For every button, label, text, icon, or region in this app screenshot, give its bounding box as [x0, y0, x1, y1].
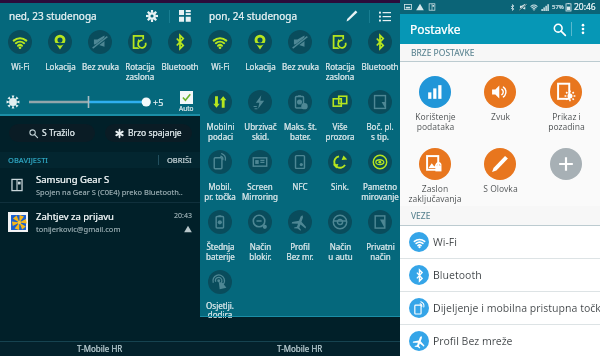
staticText: ned, 23 studenoga [9, 9, 97, 23]
button[interactable]: Wi-Fi [400, 226, 600, 258]
staticText: Postavke [410, 21, 461, 37]
staticText: Bez zvuka [82, 61, 119, 72]
staticText: Rotacija zaslona [325, 61, 355, 82]
staticText: Auto [179, 104, 194, 113]
staticText: Zvuk [491, 111, 510, 123]
button[interactable]: NFC [280, 150, 320, 210]
button[interactable]: Settings [141, 5, 163, 27]
staticText: T-Mobile HR [277, 343, 323, 354]
button[interactable]: Način u autu [320, 210, 360, 270]
staticText: Štednja baterije [206, 241, 235, 262]
staticText: VEZE [411, 210, 431, 222]
staticText: S Olovka [483, 183, 518, 195]
button[interactable] [535, 134, 597, 206]
button[interactable]: More options [572, 18, 594, 40]
button[interactable]: Ubrzivač skid. [240, 90, 280, 150]
button[interactable]: Bluetooth [160, 30, 200, 90]
button[interactable]: Sink. [320, 150, 360, 210]
staticText: Način u autu [328, 241, 353, 262]
staticText: Screen Mirroring [242, 181, 278, 202]
button[interactable]: Rotacija zaslona [320, 30, 360, 90]
staticText: NFC [292, 181, 308, 192]
staticText: OBAVIJESTI [8, 155, 49, 165]
button[interactable]: Screen Mirroring [240, 150, 280, 210]
staticText: Spojen na Gear S (C0E4) preko Bluetooth.… [36, 187, 183, 197]
button[interactable]: Maks. št. bater. [280, 90, 320, 150]
staticText: Bluetooth [361, 61, 399, 72]
button[interactable]: Način blokir. [240, 210, 280, 270]
button[interactable]: Zahtjev za prijavu [0, 203, 200, 241]
button[interactable]: Profil Bez mreže [400, 325, 600, 356]
button[interactable]: Dijeljenje i mobilna pristupna točk.. [400, 292, 600, 324]
staticText: BRZE POSTAVKE [411, 47, 475, 59]
staticText: 57% [552, 3, 564, 11]
staticText: Osjetlji. dodira [206, 300, 234, 321]
button[interactable]: Auto brightness [179, 91, 194, 113]
staticText: S Tražilo [42, 127, 75, 139]
staticText: Ubrzivač skid. [244, 121, 277, 142]
staticText: Korištenje podataka [415, 111, 456, 133]
staticText: Zaslon zaključavanja [408, 183, 462, 205]
staticText: Privatni način [366, 241, 395, 262]
staticText: Wi-Fi [11, 61, 30, 72]
button[interactable]: Bez zvuka [280, 30, 320, 90]
staticText: Sink. [331, 181, 349, 192]
button[interactable]: Brzo spajanje [105, 124, 192, 142]
button[interactable]: S Olovka [469, 134, 531, 206]
staticText: Profil Bez mreže [433, 334, 513, 348]
staticText: Boč. pl. s tip. [366, 121, 394, 142]
button[interactable]: Zvuk [469, 62, 531, 134]
button[interactable]: Više prozora [320, 90, 360, 150]
button[interactable]: Brightness slider [29, 96, 148, 108]
staticText: Prikaz i pozadina [548, 111, 585, 133]
staticText: 20:46 [574, 1, 596, 13]
staticText: Wi-Fi [211, 61, 230, 72]
button[interactable]: Samsung Gear S [0, 168, 200, 202]
staticText: tonijerkovic@gmail.com [36, 224, 121, 234]
staticText: Način blokir. [249, 241, 272, 262]
button[interactable]: Boč. pl. s tip. [360, 90, 400, 150]
staticText: Bluetooth [161, 61, 199, 72]
button[interactable]: Lokacija [240, 30, 280, 90]
button[interactable]: Edit [341, 5, 363, 27]
staticText: Dijeljenje i mobilna pristupna točk.. [433, 301, 600, 315]
staticText: +5 [153, 96, 164, 108]
button[interactable]: Bluetooth [360, 30, 400, 90]
button[interactable]: Toggle grid [374, 5, 396, 27]
button[interactable]: Osjetlji. dodira [200, 270, 240, 321]
staticText: Profil Bez mr. [286, 241, 314, 262]
staticText: Maks. št. bater. [284, 121, 317, 142]
staticText: Pametno mirovanje [361, 181, 399, 202]
staticText: pon, 24 studenoga [209, 9, 298, 23]
button[interactable]: Rotacija zaslona [120, 30, 160, 90]
button[interactable]: Bluetooth [400, 259, 600, 291]
button[interactable]: Profil Bez mr. [280, 210, 320, 270]
button[interactable]: Bez zvuka [80, 30, 120, 90]
button[interactable]: Toggle grid [174, 5, 196, 27]
button[interactable]: Privatni način [360, 210, 400, 270]
staticText: OBRIŠI [167, 155, 192, 165]
button[interactable]: OBRIŠI [159, 155, 200, 165]
staticText: Bez zvuka [282, 61, 319, 72]
button[interactable]: Wi-Fi [0, 30, 40, 90]
button[interactable]: Prikaz i pozadina [535, 62, 597, 134]
staticText: Lokacija [45, 61, 76, 72]
staticText: Lokacija [245, 61, 276, 72]
button[interactable]: Korištenje podataka [404, 62, 466, 134]
button[interactable]: Štednja baterije [200, 210, 240, 270]
staticText: Mobil. pr. točka [204, 181, 236, 202]
staticText: Brzo spajanje [128, 127, 182, 139]
staticText: Mobilni podaci [206, 121, 235, 142]
button[interactable]: Lokacija [40, 30, 80, 90]
button[interactable]: Pametno mirovanje [360, 150, 400, 210]
button[interactable]: Search [547, 17, 571, 41]
button[interactable]: Mobil. pr. točka [200, 150, 240, 210]
staticText: T-Mobile HR [77, 343, 123, 354]
button[interactable]: Mobilni podaci [200, 90, 240, 150]
button[interactable]: Wi-Fi [200, 30, 240, 90]
staticText: Bluetooth [433, 268, 482, 282]
button[interactable]: Zaslon zaključavanja [404, 134, 466, 206]
staticText: Samsung Gear S [36, 173, 110, 186]
staticText: Wi-Fi [433, 235, 458, 249]
button[interactable]: S Tražilo [9, 124, 95, 142]
